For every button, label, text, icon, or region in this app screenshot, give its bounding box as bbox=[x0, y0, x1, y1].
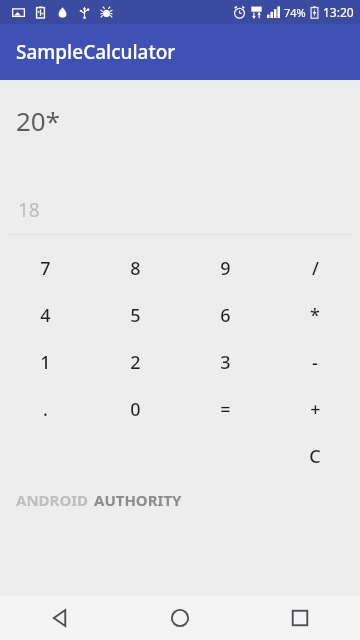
staticText: . bbox=[43, 397, 48, 422]
button[interactable]: 1 bbox=[0, 339, 90, 386]
staticText: 18 bbox=[18, 197, 40, 223]
staticText: ANDROID bbox=[16, 490, 89, 510]
staticText: = bbox=[220, 397, 231, 422]
staticText: 74% bbox=[284, 5, 306, 20]
button[interactable]: = bbox=[180, 386, 270, 433]
button[interactable]: Home bbox=[120, 596, 240, 640]
button[interactable]: 2 bbox=[90, 339, 180, 386]
button[interactable]: * bbox=[270, 292, 360, 339]
button[interactable]: Back bbox=[0, 596, 120, 640]
button[interactable]: . bbox=[0, 386, 90, 433]
staticText: 20* bbox=[16, 103, 61, 138]
staticText: 13:20 bbox=[323, 4, 354, 20]
staticText: 6 bbox=[220, 303, 231, 328]
button[interactable]: + bbox=[270, 386, 360, 433]
staticText: 9 bbox=[220, 256, 231, 281]
button[interactable]: 6 bbox=[180, 292, 270, 339]
staticText: SampleCalculator bbox=[16, 39, 176, 65]
staticText: 2 bbox=[130, 350, 141, 375]
staticText: 5 bbox=[130, 303, 141, 328]
staticText: 3 bbox=[220, 350, 231, 375]
button[interactable]: 3 bbox=[180, 339, 270, 386]
button[interactable]: 7 bbox=[0, 245, 90, 292]
staticText: 4 bbox=[40, 303, 51, 328]
button[interactable]: C bbox=[270, 433, 360, 480]
button[interactable]: / bbox=[270, 245, 360, 292]
staticText: + bbox=[310, 397, 321, 422]
staticText: 7 bbox=[40, 256, 51, 281]
staticText: / bbox=[312, 256, 319, 281]
button[interactable]: Recent apps bbox=[240, 596, 360, 640]
staticText: 0 bbox=[130, 397, 141, 422]
button[interactable]: - bbox=[270, 339, 360, 386]
button[interactable]: 5 bbox=[90, 292, 180, 339]
staticText: C bbox=[309, 444, 321, 469]
button[interactable]: 8 bbox=[90, 245, 180, 292]
staticText: * bbox=[310, 303, 320, 328]
button[interactable]: 0 bbox=[90, 386, 180, 433]
button[interactable]: 9 bbox=[180, 245, 270, 292]
button[interactable]: 4 bbox=[0, 292, 90, 339]
staticText: 8 bbox=[130, 256, 141, 281]
staticText: AUTHORITY bbox=[94, 490, 182, 510]
staticText: - bbox=[312, 350, 318, 375]
staticText: 1 bbox=[40, 350, 51, 375]
